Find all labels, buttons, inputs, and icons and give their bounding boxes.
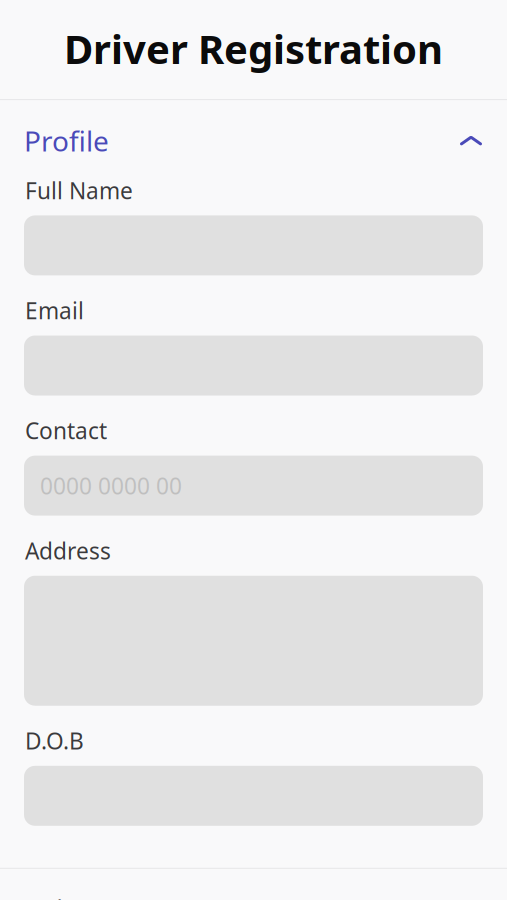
- button[interactable]: 0000 0000 00: [24, 456, 483, 516]
- staticText: Driver Registration: [64, 22, 443, 75]
- staticText: Email: [25, 295, 84, 325]
- button[interactable]: Profile: [0, 122, 507, 159]
- staticText: Full Name: [25, 175, 133, 205]
- staticText: Driver: [24, 891, 105, 900]
- staticText: Address: [25, 536, 111, 566]
- staticText: 0000 0000 00: [40, 471, 182, 501]
- staticText: Profile: [24, 122, 109, 159]
- staticText: Contact: [25, 415, 107, 446]
- staticText: D.O.B: [25, 726, 84, 756]
